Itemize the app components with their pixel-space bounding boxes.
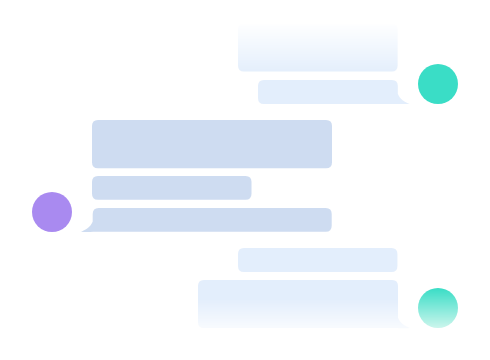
button[interactable]: Sent message [258, 80, 410, 104]
button[interactable]: Contact avatar [32, 192, 72, 232]
button[interactable]: Sent message [198, 280, 410, 328]
button[interactable]: Contact avatar [418, 64, 458, 104]
button[interactable]: Received message [81, 208, 332, 232]
button[interactable]: Contact avatar [418, 288, 458, 328]
button[interactable]: Received message [92, 176, 252, 200]
button[interactable]: Sent message [238, 24, 398, 72]
